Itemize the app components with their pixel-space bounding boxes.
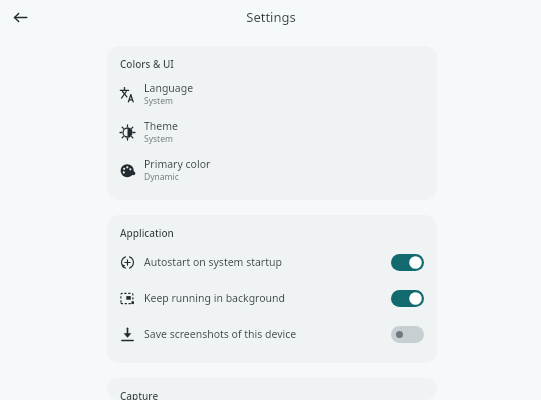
staticText: Language: [144, 81, 194, 95]
button[interactable]: Primary color: [107, 151, 437, 189]
button[interactable]: Autostart on system startup: [107, 244, 437, 280]
button[interactable]: Back: [6, 3, 34, 31]
staticText: System: [144, 133, 173, 145]
staticText: Keep running in background: [144, 291, 391, 305]
button[interactable]: Keep running in background: [107, 280, 437, 316]
button[interactable]: Language: [107, 75, 437, 113]
staticText: Settings: [246, 8, 296, 26]
staticText: Capture: [120, 389, 159, 400]
button[interactable]: Theme: [107, 113, 437, 151]
staticText: Application: [120, 226, 174, 240]
button[interactable]: Save screenshots of this device: [107, 316, 437, 352]
staticText: System: [144, 95, 173, 107]
staticText: Autostart on system startup: [144, 255, 391, 269]
staticText: Save screenshots of this device: [144, 327, 391, 341]
staticText: Theme: [144, 119, 178, 133]
staticText: Primary color: [144, 157, 211, 171]
staticText: Dynamic: [144, 171, 179, 183]
staticText: Colors & UI: [120, 57, 174, 71]
